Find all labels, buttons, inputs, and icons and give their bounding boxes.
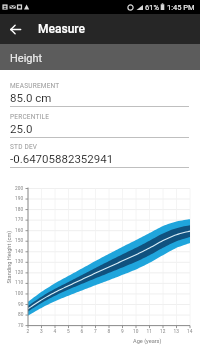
staticText: 25.0 (10, 122, 33, 135)
staticText: STD DEV (10, 143, 38, 151)
staticText: -0.64705882352941 (10, 152, 114, 165)
staticText: PERCENTILE (10, 113, 50, 121)
staticText: Measure (38, 22, 85, 36)
staticText: 61% (145, 3, 159, 12)
staticText: 85.0 cm (10, 91, 52, 104)
button[interactable]: Navigate up (0, 14, 30, 44)
staticText: Height (10, 52, 43, 65)
button[interactable]: Height (0, 44, 200, 70)
staticText: 1:45 PM (167, 3, 195, 12)
staticText: MEASUREMENT (10, 82, 60, 90)
